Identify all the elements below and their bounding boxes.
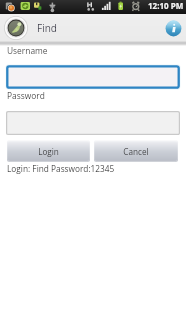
button[interactable]	[6, 111, 180, 135]
staticText: Username	[7, 45, 48, 56]
button[interactable]: Login	[7, 140, 90, 162]
staticText: Login	[38, 146, 59, 157]
staticText: Cancel	[123, 146, 149, 157]
staticText: Password	[7, 90, 45, 101]
button[interactable]	[6, 65, 180, 89]
button[interactable]: Cancel	[94, 140, 178, 162]
staticText: Login: Find Password:12345	[7, 163, 115, 174]
button[interactable]: Info	[162, 17, 184, 39]
staticText: 12:10 PM	[148, 0, 184, 11]
staticText: Find	[37, 21, 57, 35]
